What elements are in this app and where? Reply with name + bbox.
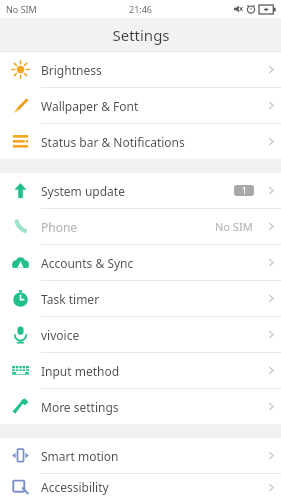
- staticText: Smart motion: [41, 448, 261, 464]
- button[interactable]: Accessibility: [0, 474, 281, 500]
- staticText: vivoice: [41, 327, 261, 343]
- button[interactable]: Brightness: [0, 52, 281, 87]
- staticText: Wallpaper & Font: [41, 98, 261, 114]
- button[interactable]: Input method: [0, 353, 281, 388]
- staticText: More settings: [41, 399, 261, 415]
- staticText: No SIM: [215, 219, 253, 234]
- staticText: Settings: [112, 25, 170, 45]
- staticText: Brightness: [41, 62, 261, 78]
- button[interactable]: Accounts & Sync: [0, 245, 281, 280]
- button[interactable]: System update: [0, 173, 281, 208]
- button[interactable]: Phone: [0, 209, 281, 244]
- staticText: System update: [41, 183, 234, 199]
- staticText: Input method: [41, 363, 261, 379]
- staticText: Accessibility: [41, 479, 261, 495]
- staticText: Status bar & Notifications: [41, 134, 261, 150]
- staticText: 1: [242, 185, 247, 196]
- staticText: Phone: [41, 219, 215, 235]
- staticText: Accounts & Sync: [41, 255, 261, 271]
- button[interactable]: Smart motion: [0, 438, 281, 473]
- button[interactable]: vivoice: [0, 317, 281, 352]
- staticText: No SIM: [6, 3, 37, 15]
- button[interactable]: More settings: [0, 389, 281, 424]
- staticText: Task timer: [41, 291, 261, 307]
- button[interactable]: Wallpaper & Font: [0, 88, 281, 123]
- staticText: 21:46: [129, 3, 153, 15]
- button[interactable]: Status bar & Notifications: [0, 124, 281, 159]
- button[interactable]: Task timer: [0, 281, 281, 316]
